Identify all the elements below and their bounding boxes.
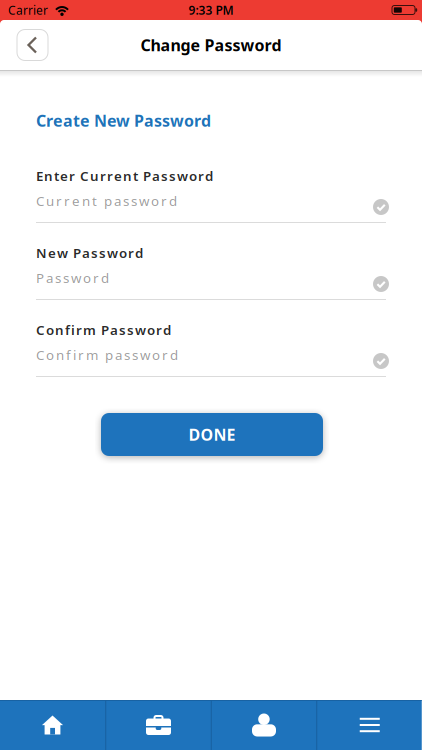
button[interactable]: Home	[0, 700, 105, 750]
button[interactable]: DONE	[101, 413, 323, 456]
button[interactable]: Profile	[212, 700, 316, 750]
staticText: E n t e r C u r r e n t P a s s w o r d	[36, 167, 213, 185]
button[interactable]: Back	[17, 29, 48, 60]
staticText: C o n f i r m P a s s w o r d	[36, 321, 171, 339]
staticText: Create New Password	[36, 110, 211, 131]
staticText: Change Password	[140, 34, 281, 56]
staticText: Carrier	[8, 2, 48, 18]
button[interactable]: Jobs	[106, 700, 211, 750]
staticText: C o n f i r m p a s s w o r d	[36, 346, 178, 364]
staticText: P a s s w o r d	[36, 269, 109, 287]
staticText: N e w P a s s w o r d	[36, 244, 143, 262]
button[interactable]: Menu	[317, 700, 422, 750]
staticText: 9:33 PM	[188, 2, 233, 18]
staticText: C u r r e n t p a s s w o r d	[36, 192, 177, 210]
staticText: DONE	[188, 424, 235, 445]
